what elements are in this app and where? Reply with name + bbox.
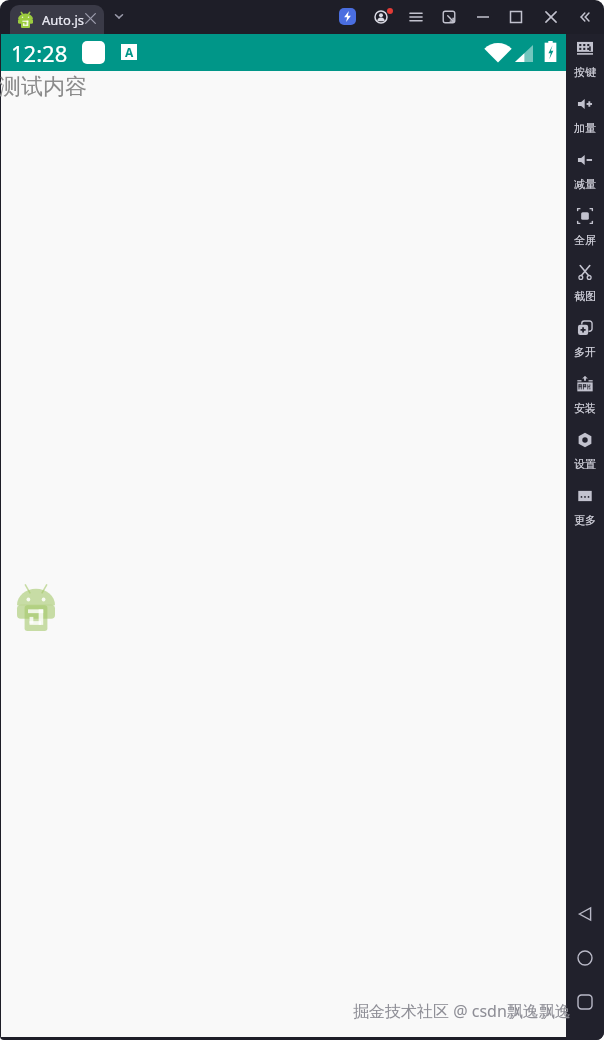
staticText: 更多 <box>574 513 596 527</box>
button[interactable]: 设置 <box>566 432 604 471</box>
button[interactable]: Detach <box>441 9 457 25</box>
button[interactable]: Home <box>577 950 593 966</box>
button[interactable]: 安装 <box>566 376 604 415</box>
button[interactable]: 按键 <box>566 40 604 79</box>
button[interactable]: Recents <box>577 994 593 1010</box>
button[interactable]: 减量 <box>566 152 604 191</box>
button[interactable]: Maximize <box>508 9 524 25</box>
staticText: 多开 <box>574 345 596 359</box>
staticText: 安装 <box>574 401 596 415</box>
button[interactable]: Tab list <box>111 8 127 24</box>
button[interactable]: Auto.js <box>10 5 104 34</box>
staticText: A <box>125 44 134 60</box>
staticText: 设置 <box>574 457 596 471</box>
button[interactable]: Account <box>374 10 388 24</box>
button[interactable]: Auto.js floating button <box>17 584 55 631</box>
button[interactable]: Minimize <box>475 9 491 25</box>
staticText: Auto.js <box>42 11 84 29</box>
staticText: 按键 <box>574 65 596 79</box>
button[interactable]: Collapse <box>576 9 592 25</box>
staticText: 测试内容 <box>0 73 87 101</box>
button[interactable]: 全屏 <box>566 208 604 247</box>
button[interactable]: Boost <box>339 8 356 25</box>
staticText: 12:28 <box>11 38 68 68</box>
button[interactable]: Menu <box>408 9 424 25</box>
button[interactable]: Close tab <box>85 13 96 24</box>
staticText: 截图 <box>574 289 596 303</box>
button[interactable]: Close <box>543 9 559 25</box>
staticText: 掘金技术社区 @ csdn飘逸飘逸 <box>353 1000 571 1022</box>
button[interactable]: 截图 <box>566 264 604 303</box>
button[interactable]: 更多 <box>566 488 604 527</box>
staticText: 减量 <box>574 177 596 191</box>
button[interactable]: 加量 <box>566 96 604 135</box>
staticText: 全屏 <box>574 233 596 247</box>
button[interactable]: Back <box>577 906 593 922</box>
button[interactable]: 多开 <box>566 320 604 359</box>
staticText: 加量 <box>574 121 596 135</box>
